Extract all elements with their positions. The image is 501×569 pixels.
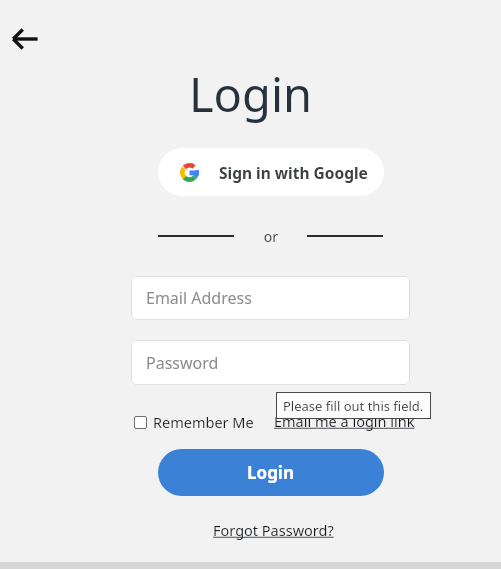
staticText: Login xyxy=(0,62,501,569)
button[interactable]: Back xyxy=(5,19,45,59)
staticText: Password xyxy=(146,352,219,374)
button[interactable]: Login xyxy=(158,449,384,496)
staticText: Email Address xyxy=(146,287,252,309)
staticText: or xyxy=(250,227,292,569)
button[interactable]: Forgot Password? xyxy=(213,520,334,540)
button[interactable]: Password xyxy=(131,340,410,385)
staticText: Remember Me xyxy=(153,412,254,432)
staticText: Login xyxy=(247,461,295,484)
button[interactable]: Remember Me xyxy=(131,410,256,434)
staticText: Forgot Password? xyxy=(213,520,334,540)
staticText: Please fill out this field. xyxy=(283,397,424,415)
button[interactable]: Email me a login link xyxy=(274,411,415,431)
button[interactable]: Sign in with Google xyxy=(158,148,384,196)
staticText: Email me a login link xyxy=(274,411,415,431)
button[interactable]: Email Address xyxy=(131,276,410,320)
staticText: Sign in with Google xyxy=(219,162,368,183)
